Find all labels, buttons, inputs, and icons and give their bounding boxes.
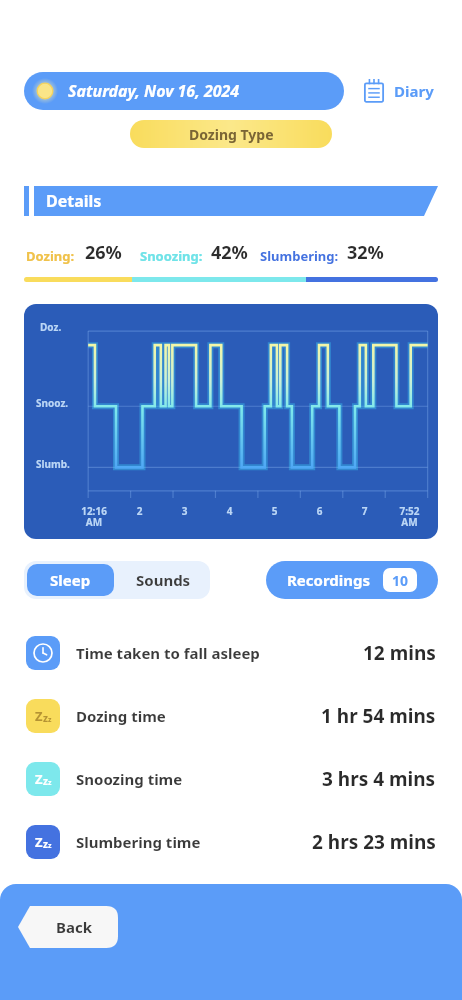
staticText: 10 [392,571,409,590]
button[interactable]: Z [0,810,462,873]
staticText: 3 [162,504,207,518]
staticText: z [48,841,52,851]
staticText: Diary [394,81,434,101]
staticText: Doz. [40,320,62,334]
staticText: Details [46,190,102,212]
button[interactable]: Z [0,747,462,810]
staticText: 7:52 AM [387,504,432,529]
staticText: Slumbering time [76,832,201,852]
staticText: Sounds [136,570,191,590]
button[interactable]: Diary [358,75,438,107]
staticText: 42% [211,240,248,265]
staticText: z [48,778,52,788]
staticText: Snoozing: [140,247,203,265]
button[interactable]: Recordings [266,561,438,599]
staticText: 3 hrs 4 mins [322,766,436,792]
staticText: z [43,774,48,788]
staticText: Slumb. [36,457,70,471]
staticText: 1 hr 54 mins [321,703,436,729]
staticText: Dozing Type [189,125,274,144]
staticText: 12 mins [363,640,436,666]
staticText: 2 hrs 23 mins [312,829,436,855]
staticText: Snoozing time [76,769,183,789]
staticText: z [43,837,48,851]
button[interactable]: Z [0,684,462,747]
staticText: 2 [117,504,162,518]
staticText: Recordings [287,570,371,590]
staticText: Z [35,707,43,725]
staticText: Slumbering: [260,247,339,265]
staticText: z [48,715,52,725]
staticText: 4 [207,504,252,518]
staticText: 6 [297,504,342,518]
staticText: Z [35,770,43,788]
staticText: 7 [342,504,387,518]
button[interactable]: Dozing Type [130,120,332,148]
staticText: 12:16 AM [71,504,117,529]
button[interactable]: Sleep [27,564,114,596]
button[interactable]: Saturday, Nov 16, 2024 [24,72,344,110]
button[interactable]: Sounds [117,561,210,599]
staticText: z [43,711,48,725]
staticText: Time taken to fall asleep [76,643,260,663]
staticText: Dozing: [26,247,75,265]
staticText: 5 [252,504,297,518]
staticText: Saturday, Nov 16, 2024 [68,80,240,102]
button[interactable]: Back [18,906,118,948]
staticText: 32% [347,240,384,265]
staticText: 26% [85,240,122,265]
staticText: Dozing time [76,706,166,726]
staticText: Back [56,917,93,937]
staticText: Snooz. [36,396,69,410]
staticText: Sleep [50,570,91,590]
staticText: Z [35,833,43,851]
button[interactable]: Time taken to fall asleep [0,621,462,684]
